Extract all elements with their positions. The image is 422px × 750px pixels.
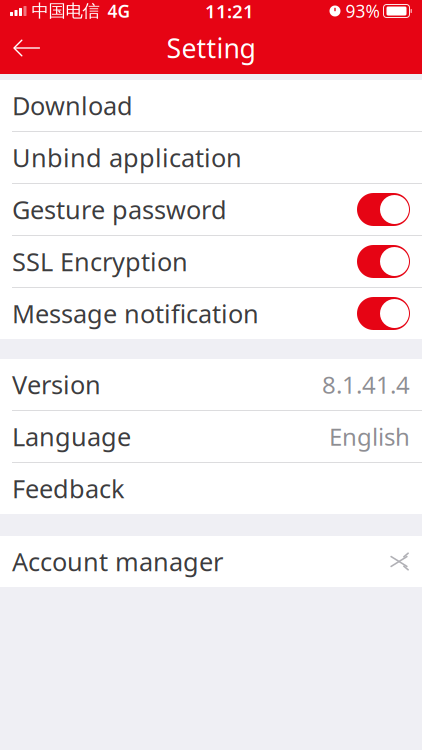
staticText: Download <box>12 89 133 122</box>
button[interactable]: Download <box>0 80 422 131</box>
staticText: 中国电信 <box>31 0 99 22</box>
staticText: 11:21 <box>205 0 254 23</box>
staticText: Language <box>12 420 131 453</box>
button[interactable]: Message notification <box>0 288 422 339</box>
button[interactable]: Account manager <box>0 536 422 587</box>
staticText: 4G <box>107 0 130 22</box>
staticText: Setting <box>166 30 255 66</box>
staticText: Message notification <box>12 297 259 330</box>
staticText: 8.1.41.4 <box>322 369 410 400</box>
staticText: Gesture password <box>12 193 227 226</box>
button[interactable]: SSL Encryption <box>0 236 422 287</box>
button[interactable]: Language <box>0 411 422 462</box>
button[interactable]: Gesture password <box>0 184 422 235</box>
staticText: Account manager <box>12 545 223 578</box>
staticText: English <box>329 421 410 452</box>
staticText: SSL Encryption <box>12 245 188 278</box>
button[interactable]: Unbind application <box>0 132 422 183</box>
button[interactable]: Back <box>0 26 54 70</box>
button[interactable]: Feedback <box>0 463 422 514</box>
button[interactable]: Version <box>0 359 422 410</box>
staticText: Unbind application <box>12 141 242 174</box>
staticText: Feedback <box>12 472 125 505</box>
staticText: 93% <box>345 0 379 22</box>
staticText: Version <box>12 368 101 401</box>
